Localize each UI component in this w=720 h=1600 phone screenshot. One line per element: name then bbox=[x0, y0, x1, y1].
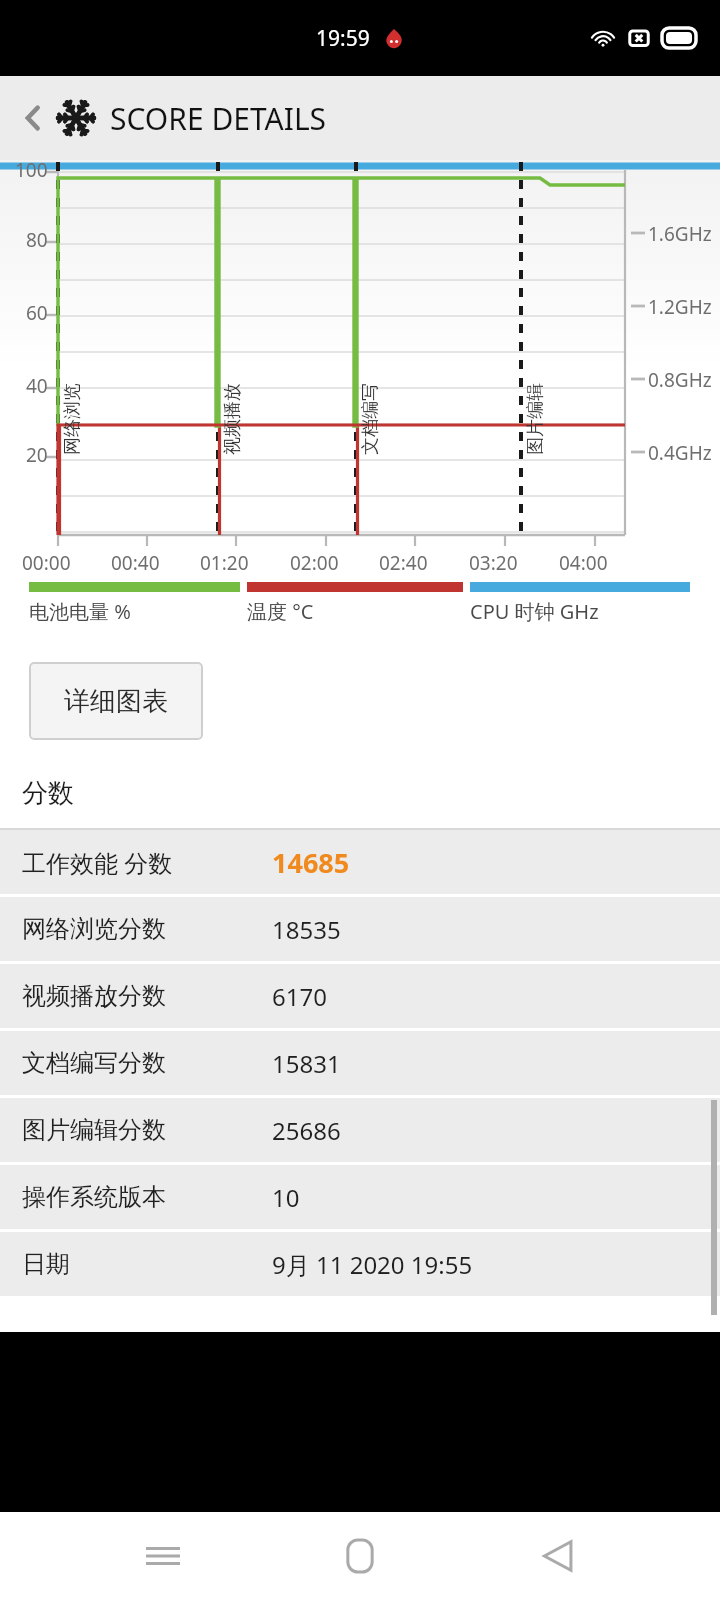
staticText: 40 bbox=[26, 373, 48, 399]
staticText: 02:00 bbox=[290, 550, 339, 576]
staticText: 网络浏览 bbox=[61, 383, 84, 455]
button[interactable]: 操作系统版本 bbox=[0, 1165, 720, 1229]
staticText: 1.2GHz bbox=[648, 294, 712, 320]
staticText: 01:20 bbox=[200, 550, 249, 576]
staticText: 0.8GHz bbox=[648, 367, 712, 393]
staticText: 工作效能 分数 bbox=[22, 846, 272, 879]
staticText: 图片编辑 bbox=[524, 383, 547, 455]
staticText: 60 bbox=[26, 300, 48, 326]
staticText: 视频播放分数 bbox=[22, 981, 272, 1011]
staticText: 日期 bbox=[22, 1249, 272, 1279]
staticText: 00:00 bbox=[22, 550, 71, 576]
staticText: 00:40 bbox=[111, 550, 160, 576]
button[interactable]: 工作效能 分数 bbox=[0, 830, 720, 894]
staticText: 详细图表 bbox=[64, 685, 168, 718]
button[interactable]: 文档编写分数 bbox=[0, 1031, 720, 1095]
staticText: 文档编写分数 bbox=[22, 1048, 272, 1078]
staticText: 9月 11 2020 19:55 bbox=[272, 1248, 473, 1281]
staticText: 20 bbox=[26, 442, 48, 468]
button[interactable]: Home bbox=[325, 1521, 395, 1591]
staticText: 03:20 bbox=[469, 550, 518, 576]
staticText: CPU 时钟 GHz bbox=[470, 598, 599, 625]
button[interactable]: 日期 bbox=[0, 1232, 720, 1296]
button[interactable]: Back bbox=[523, 1521, 593, 1591]
staticText: 操作系统版本 bbox=[22, 1182, 272, 1212]
button[interactable]: 网络浏览分数 bbox=[0, 897, 720, 961]
staticText: 14685 bbox=[272, 844, 350, 881]
staticText: 6170 bbox=[272, 980, 327, 1013]
button[interactable]: 图片编辑分数 bbox=[0, 1098, 720, 1162]
staticText: 网络浏览分数 bbox=[22, 914, 272, 944]
staticText: 25686 bbox=[272, 1114, 341, 1147]
staticText: 图片编辑分数 bbox=[22, 1115, 272, 1145]
staticText: 02:40 bbox=[379, 550, 428, 576]
staticText: 视频播放 bbox=[221, 383, 244, 455]
staticText: 04:00 bbox=[559, 550, 608, 576]
staticText: 温度 °C bbox=[247, 598, 314, 625]
staticText: 100 bbox=[15, 157, 48, 183]
staticText: 80 bbox=[26, 227, 48, 253]
staticText: 18535 bbox=[272, 913, 341, 946]
button[interactable]: Back bbox=[10, 95, 56, 141]
staticText: 15831 bbox=[272, 1047, 341, 1080]
button[interactable]: 详细图表 bbox=[29, 662, 203, 740]
staticText: 19:59 bbox=[316, 24, 370, 53]
staticText: 分数 bbox=[22, 777, 74, 810]
button[interactable]: Recent apps bbox=[128, 1521, 198, 1591]
staticText: 10 bbox=[272, 1181, 300, 1214]
staticText: 电池电量 % bbox=[29, 598, 131, 625]
staticText: SCORE DETAILS bbox=[110, 98, 327, 139]
staticText: 文档编写 bbox=[359, 383, 382, 455]
staticText: 1.6GHz bbox=[648, 221, 712, 247]
button[interactable]: 视频播放分数 bbox=[0, 964, 720, 1028]
staticText: 0.4GHz bbox=[648, 440, 712, 466]
